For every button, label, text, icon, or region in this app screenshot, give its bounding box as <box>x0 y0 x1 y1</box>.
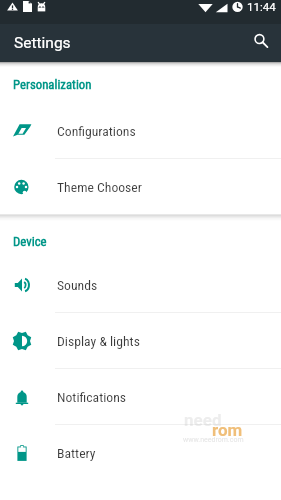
staticText: Configurations <box>57 123 136 139</box>
staticText: 11:44 <box>247 0 276 13</box>
staticText: Theme Chooser <box>57 179 142 195</box>
button[interactable]: Notifications <box>0 369 281 424</box>
button[interactable]: Sounds <box>0 257 281 312</box>
staticText: Notifications <box>57 389 127 405</box>
button[interactable]: Display & lights <box>0 313 281 368</box>
staticText: rom <box>212 420 243 440</box>
staticText: Display & lights <box>57 333 140 349</box>
staticText: Personalization <box>13 77 92 92</box>
button[interactable]: Battery <box>0 425 281 480</box>
staticText: www.needrom.com <box>183 436 244 444</box>
staticText: Device <box>13 234 47 249</box>
button[interactable]: Theme Chooser <box>0 159 281 214</box>
button[interactable]: Search <box>246 26 276 56</box>
staticText: Sounds <box>57 277 98 293</box>
staticText: Battery <box>57 445 96 461</box>
button[interactable]: Configurations <box>0 103 281 158</box>
staticText: Settings <box>14 34 71 52</box>
staticText: need <box>184 410 222 430</box>
